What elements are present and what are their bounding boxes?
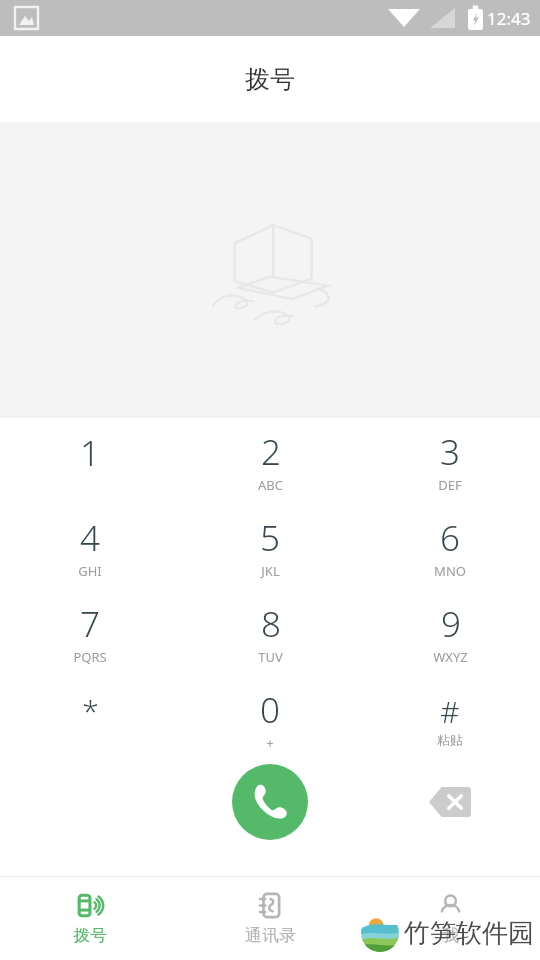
staticText: 4	[80, 514, 100, 562]
button[interactable]: 6	[360, 504, 540, 590]
button[interactable]: 5	[180, 504, 360, 590]
button[interactable]: 我	[360, 877, 540, 960]
button[interactable]: 8	[180, 590, 360, 676]
staticText: 竹笋软件园	[404, 917, 534, 950]
button[interactable]: 9	[360, 590, 540, 676]
staticText: DEF	[438, 476, 462, 494]
staticText: GHI	[78, 562, 102, 580]
button[interactable]: 1	[0, 418, 180, 504]
staticText: 拨号	[245, 64, 295, 95]
staticText: 8	[261, 600, 281, 648]
staticText: 我	[442, 925, 459, 946]
button[interactable]: *	[0, 676, 180, 762]
button[interactable]: 0	[180, 676, 360, 762]
button[interactable]: 3	[360, 418, 540, 504]
staticText: PQRS	[73, 648, 107, 666]
button[interactable]: 2	[180, 418, 360, 504]
staticText: 3	[440, 428, 460, 476]
button[interactable]: 7	[0, 590, 180, 676]
staticText: 拨号	[73, 925, 107, 946]
staticText: 9	[441, 600, 461, 648]
staticText: 12:43	[487, 7, 531, 30]
staticText: 1	[80, 429, 100, 477]
staticText: 5	[260, 514, 280, 562]
staticText: WXYZ	[433, 648, 468, 666]
staticText: MNO	[434, 562, 466, 580]
button[interactable]: #	[360, 676, 540, 762]
button[interactable]: 拨号	[0, 877, 180, 960]
staticText: 7	[80, 600, 100, 648]
button[interactable]: Backspace	[422, 774, 478, 830]
button[interactable]: 4	[0, 504, 180, 590]
staticText: #	[440, 691, 460, 732]
staticText: ABC	[258, 476, 283, 494]
staticText: JKL	[261, 562, 280, 580]
staticText: 6	[440, 514, 460, 562]
staticText: 粘贴	[437, 732, 463, 748]
staticText: *	[82, 690, 99, 731]
staticText: 2	[261, 428, 281, 476]
staticText: TUV	[258, 648, 283, 666]
button[interactable]: Call	[232, 764, 308, 840]
staticText: +	[266, 734, 274, 752]
staticText: 通讯录	[245, 925, 296, 946]
button[interactable]: 通讯录	[180, 877, 360, 960]
staticText: 0	[260, 686, 280, 734]
